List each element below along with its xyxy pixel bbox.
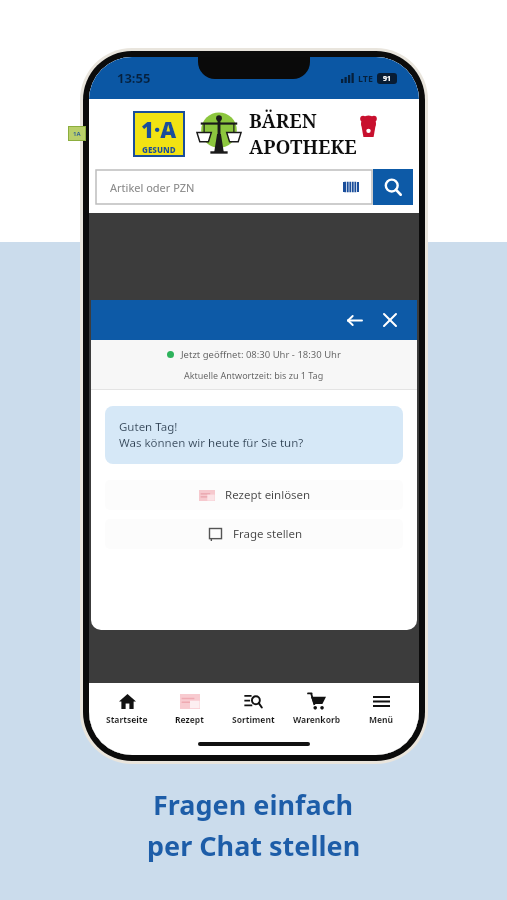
button[interactable]: Artikel oder PZN: [95, 169, 373, 205]
button[interactable]: Frage stellen: [105, 519, 403, 549]
button[interactable]: Warenkorb: [285, 683, 349, 733]
staticText: Startseite: [106, 714, 148, 726]
other: Barcode scannen: [342, 180, 360, 194]
staticText: GESUND: [142, 144, 176, 155]
staticText: Frage stellen: [233, 526, 303, 542]
staticText: Warenkorb: [293, 714, 341, 726]
staticText: Guten Tag!: [119, 419, 178, 435]
staticText: Rezept: [175, 714, 204, 726]
staticText: Artikel oder PZN: [110, 180, 195, 195]
staticText: 91: [383, 74, 392, 84]
staticText: LTE: [358, 72, 374, 84]
staticText: 1·A: [141, 114, 177, 144]
button[interactable]: Suchen: [373, 169, 413, 205]
staticText: Fragen einfach: [153, 786, 354, 823]
staticText: per Chat stellen: [147, 827, 361, 864]
staticText: Menü: [369, 714, 394, 726]
staticText: Rezept einlösen: [225, 487, 311, 503]
staticText: Jetzt geöffnet: 08:30 Uhr - 18:30 Uhr: [181, 348, 341, 361]
button[interactable]: Zurück: [341, 307, 367, 333]
button[interactable]: Sortiment: [221, 683, 285, 733]
button[interactable]: Startseite: [95, 683, 158, 733]
button[interactable]: Menü: [349, 683, 413, 733]
button[interactable]: Rezept einlösen: [105, 480, 403, 510]
staticText: Aktuelle Antwortzeit: bis zu 1 Tag: [184, 369, 324, 381]
staticText: Was können wir heute für Sie tun?: [119, 435, 304, 451]
button[interactable]: Rezept: [158, 683, 221, 733]
staticText: 1A: [73, 130, 81, 138]
staticText: BÄREN: [249, 108, 317, 134]
staticText: APOTHEKE: [249, 134, 357, 160]
staticText: Sortiment: [232, 714, 275, 726]
staticText: 13:55: [117, 69, 151, 87]
button[interactable]: Schließen: [377, 307, 403, 333]
